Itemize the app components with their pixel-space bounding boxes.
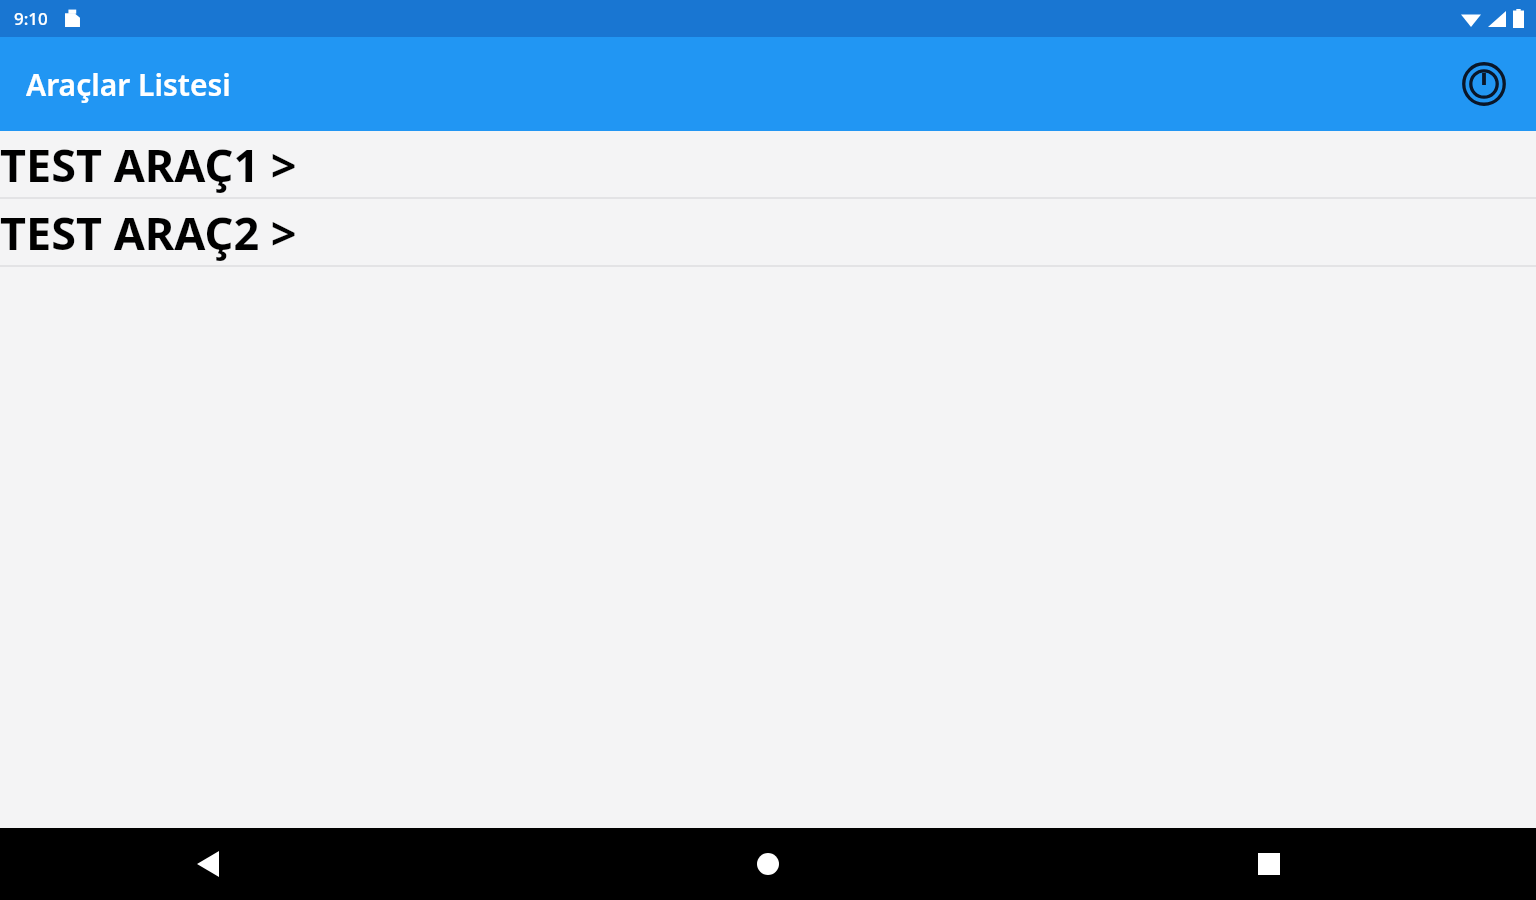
staticText: 9:10	[14, 7, 48, 30]
staticText: TEST ARAÇ2 >	[0, 202, 297, 263]
button[interactable]: Back	[0, 828, 512, 900]
staticText: Araçlar Listesi	[26, 64, 231, 105]
button[interactable]: TEST ARAÇ1 >	[0, 131, 1536, 197]
button[interactable]: Recent apps	[1024, 828, 1536, 900]
staticText: TEST ARAÇ1 >	[0, 134, 297, 195]
button[interactable]: Power	[1456, 56, 1512, 112]
button[interactable]: Home	[512, 828, 1024, 900]
button[interactable]: TEST ARAÇ2 >	[0, 199, 1536, 265]
